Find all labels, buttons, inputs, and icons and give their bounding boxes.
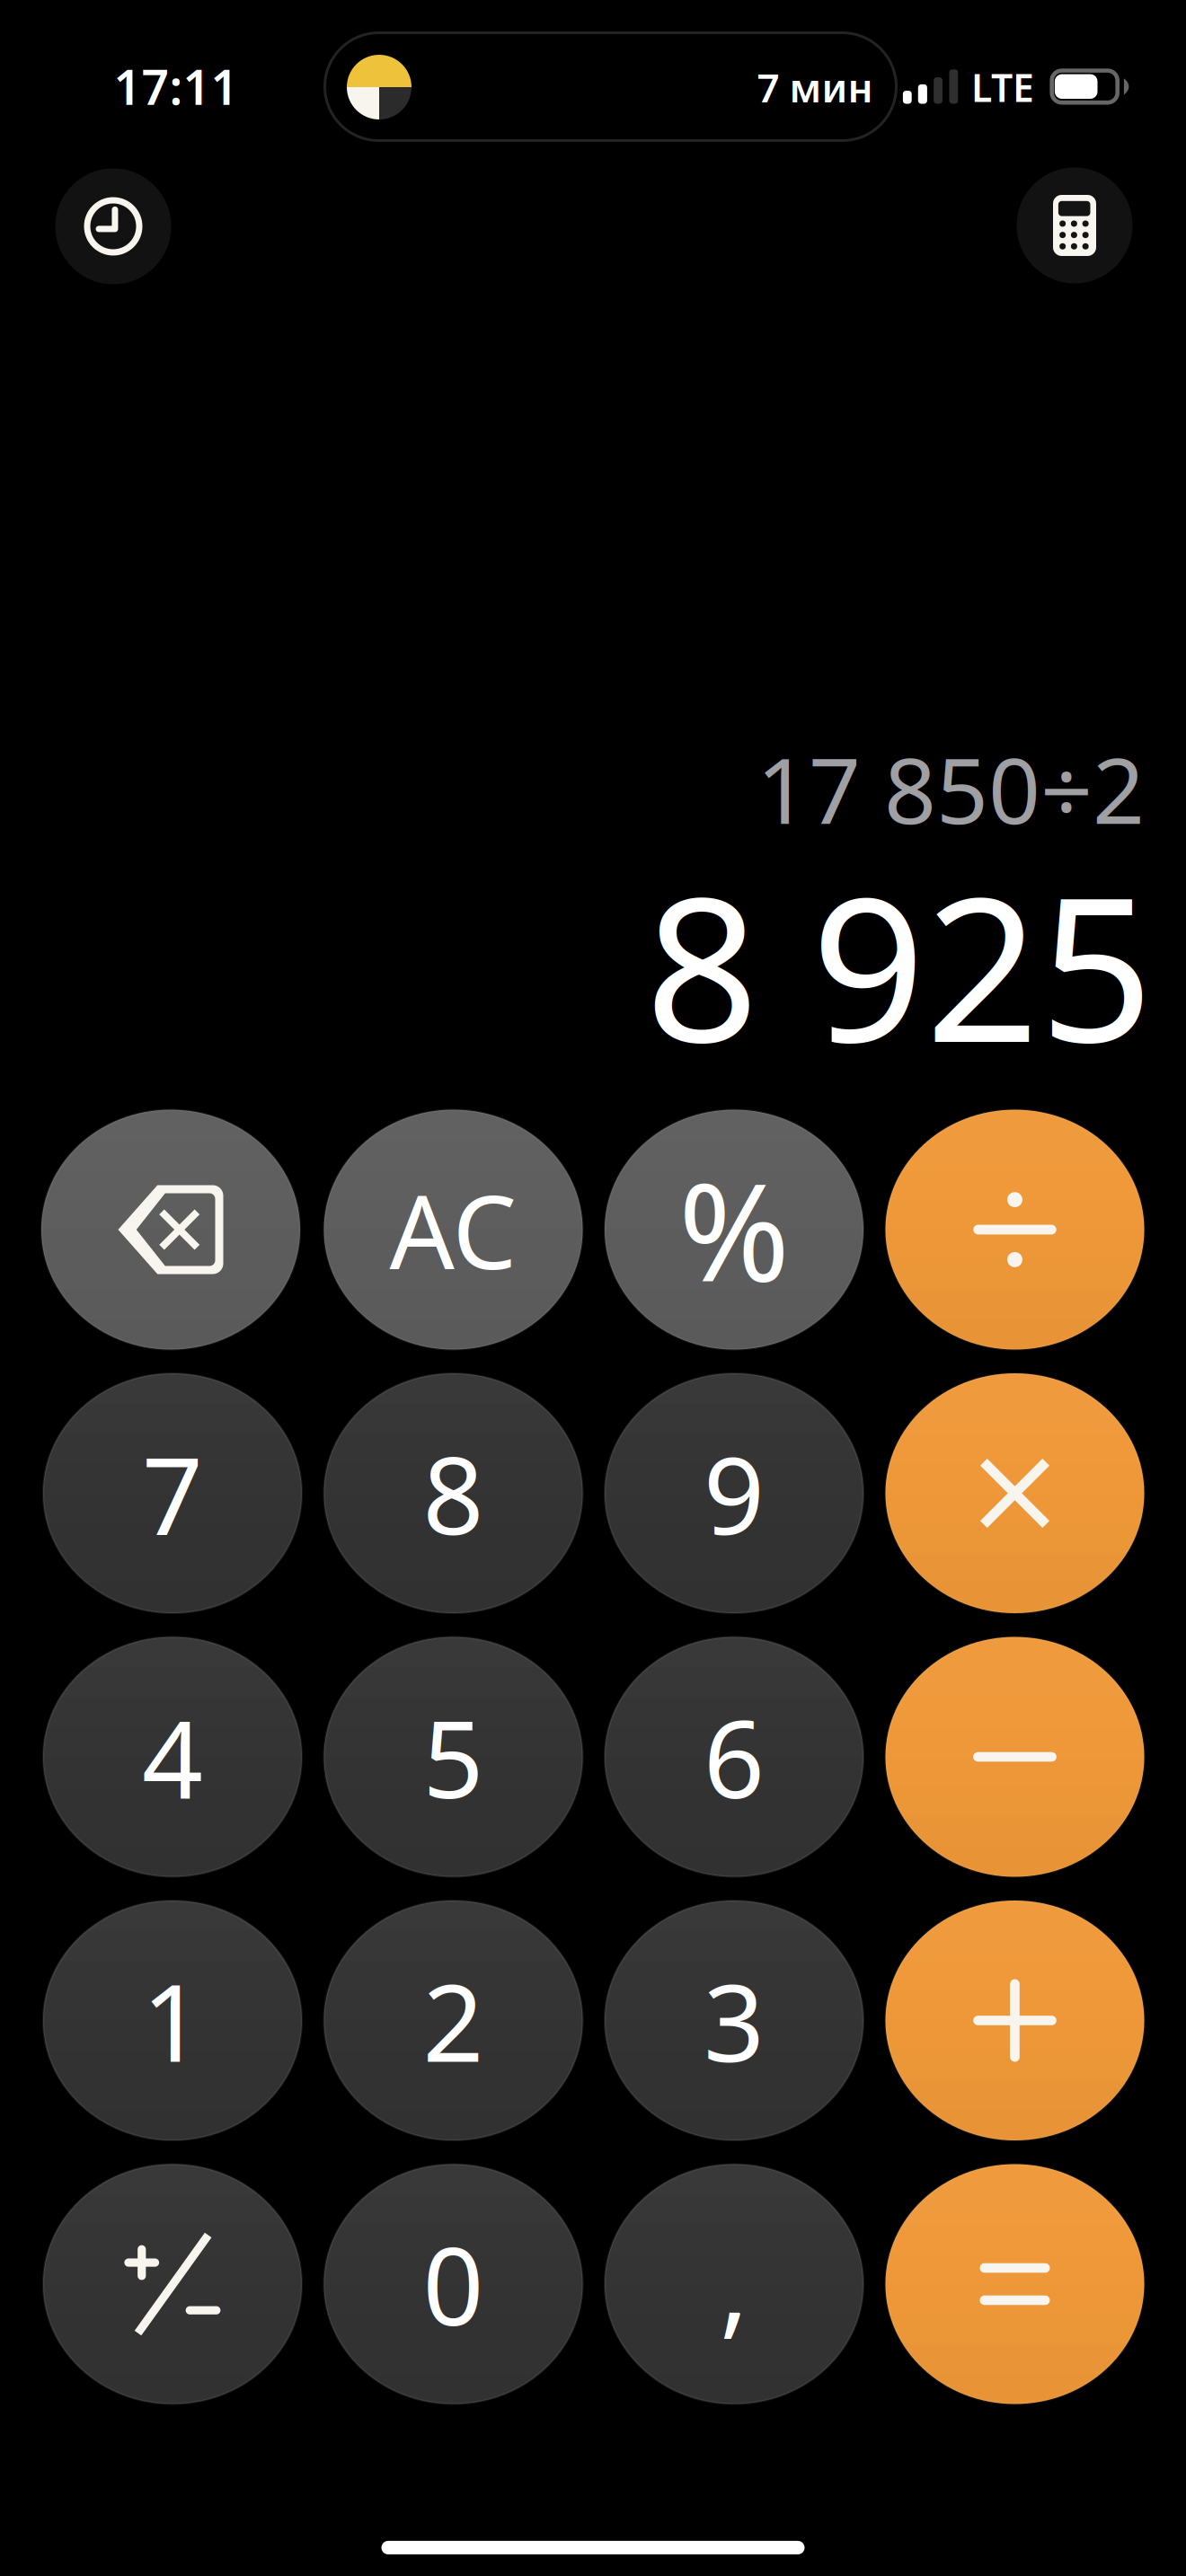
staticText: AC [389,1162,517,1297]
staticText: 8 [423,1422,484,1564]
button[interactable]: Toggle sign [43,2164,302,2404]
button[interactable]: AC [324,1110,583,1350]
button[interactable]: 1 [43,1901,302,2140]
staticText: 1 [142,1950,203,2091]
staticText: 17:11 [114,54,239,118]
staticText: 7 [142,1422,203,1564]
staticText: 7 мин [757,61,873,113]
button[interactable]: Minus [885,1637,1144,1877]
staticText: 5 [423,1686,484,1828]
button[interactable]: 4 [43,1637,302,1877]
button[interactable]: 0 [324,2164,583,2404]
button[interactable]: 9 [605,1373,863,1613]
staticText: 17 850÷2 [757,728,1145,849]
button[interactable]: 3 [605,1901,863,2140]
staticText: 2 [423,1950,484,2091]
button[interactable]: Delete [41,1110,300,1350]
staticText: 8 925 [645,833,1154,1097]
button[interactable]: 2 [324,1901,583,2140]
staticText: % [678,1141,790,1319]
staticText: LTE [971,62,1034,113]
button[interactable]: Multiply [885,1373,1144,1613]
staticText: 9 [704,1422,765,1564]
button[interactable]: 8 [324,1373,583,1613]
button[interactable]: Equals [885,2164,1144,2404]
button[interactable]: Calculator [1017,168,1133,283]
staticText: 6 [704,1686,765,1828]
button[interactable]: History [55,168,171,284]
button[interactable]: % [605,1110,863,1350]
button[interactable]: 5 [324,1637,583,1877]
button[interactable]: 6 [605,1637,863,1877]
staticText: , [720,2213,748,2355]
button[interactable]: Divide [885,1110,1144,1350]
staticText: 4 [142,1686,203,1828]
staticText: 0 [423,2213,484,2355]
button[interactable]: , [605,2164,863,2404]
button[interactable]: 7 [43,1373,302,1613]
button[interactable]: Plus [885,1901,1144,2140]
staticText: 3 [704,1950,765,2091]
